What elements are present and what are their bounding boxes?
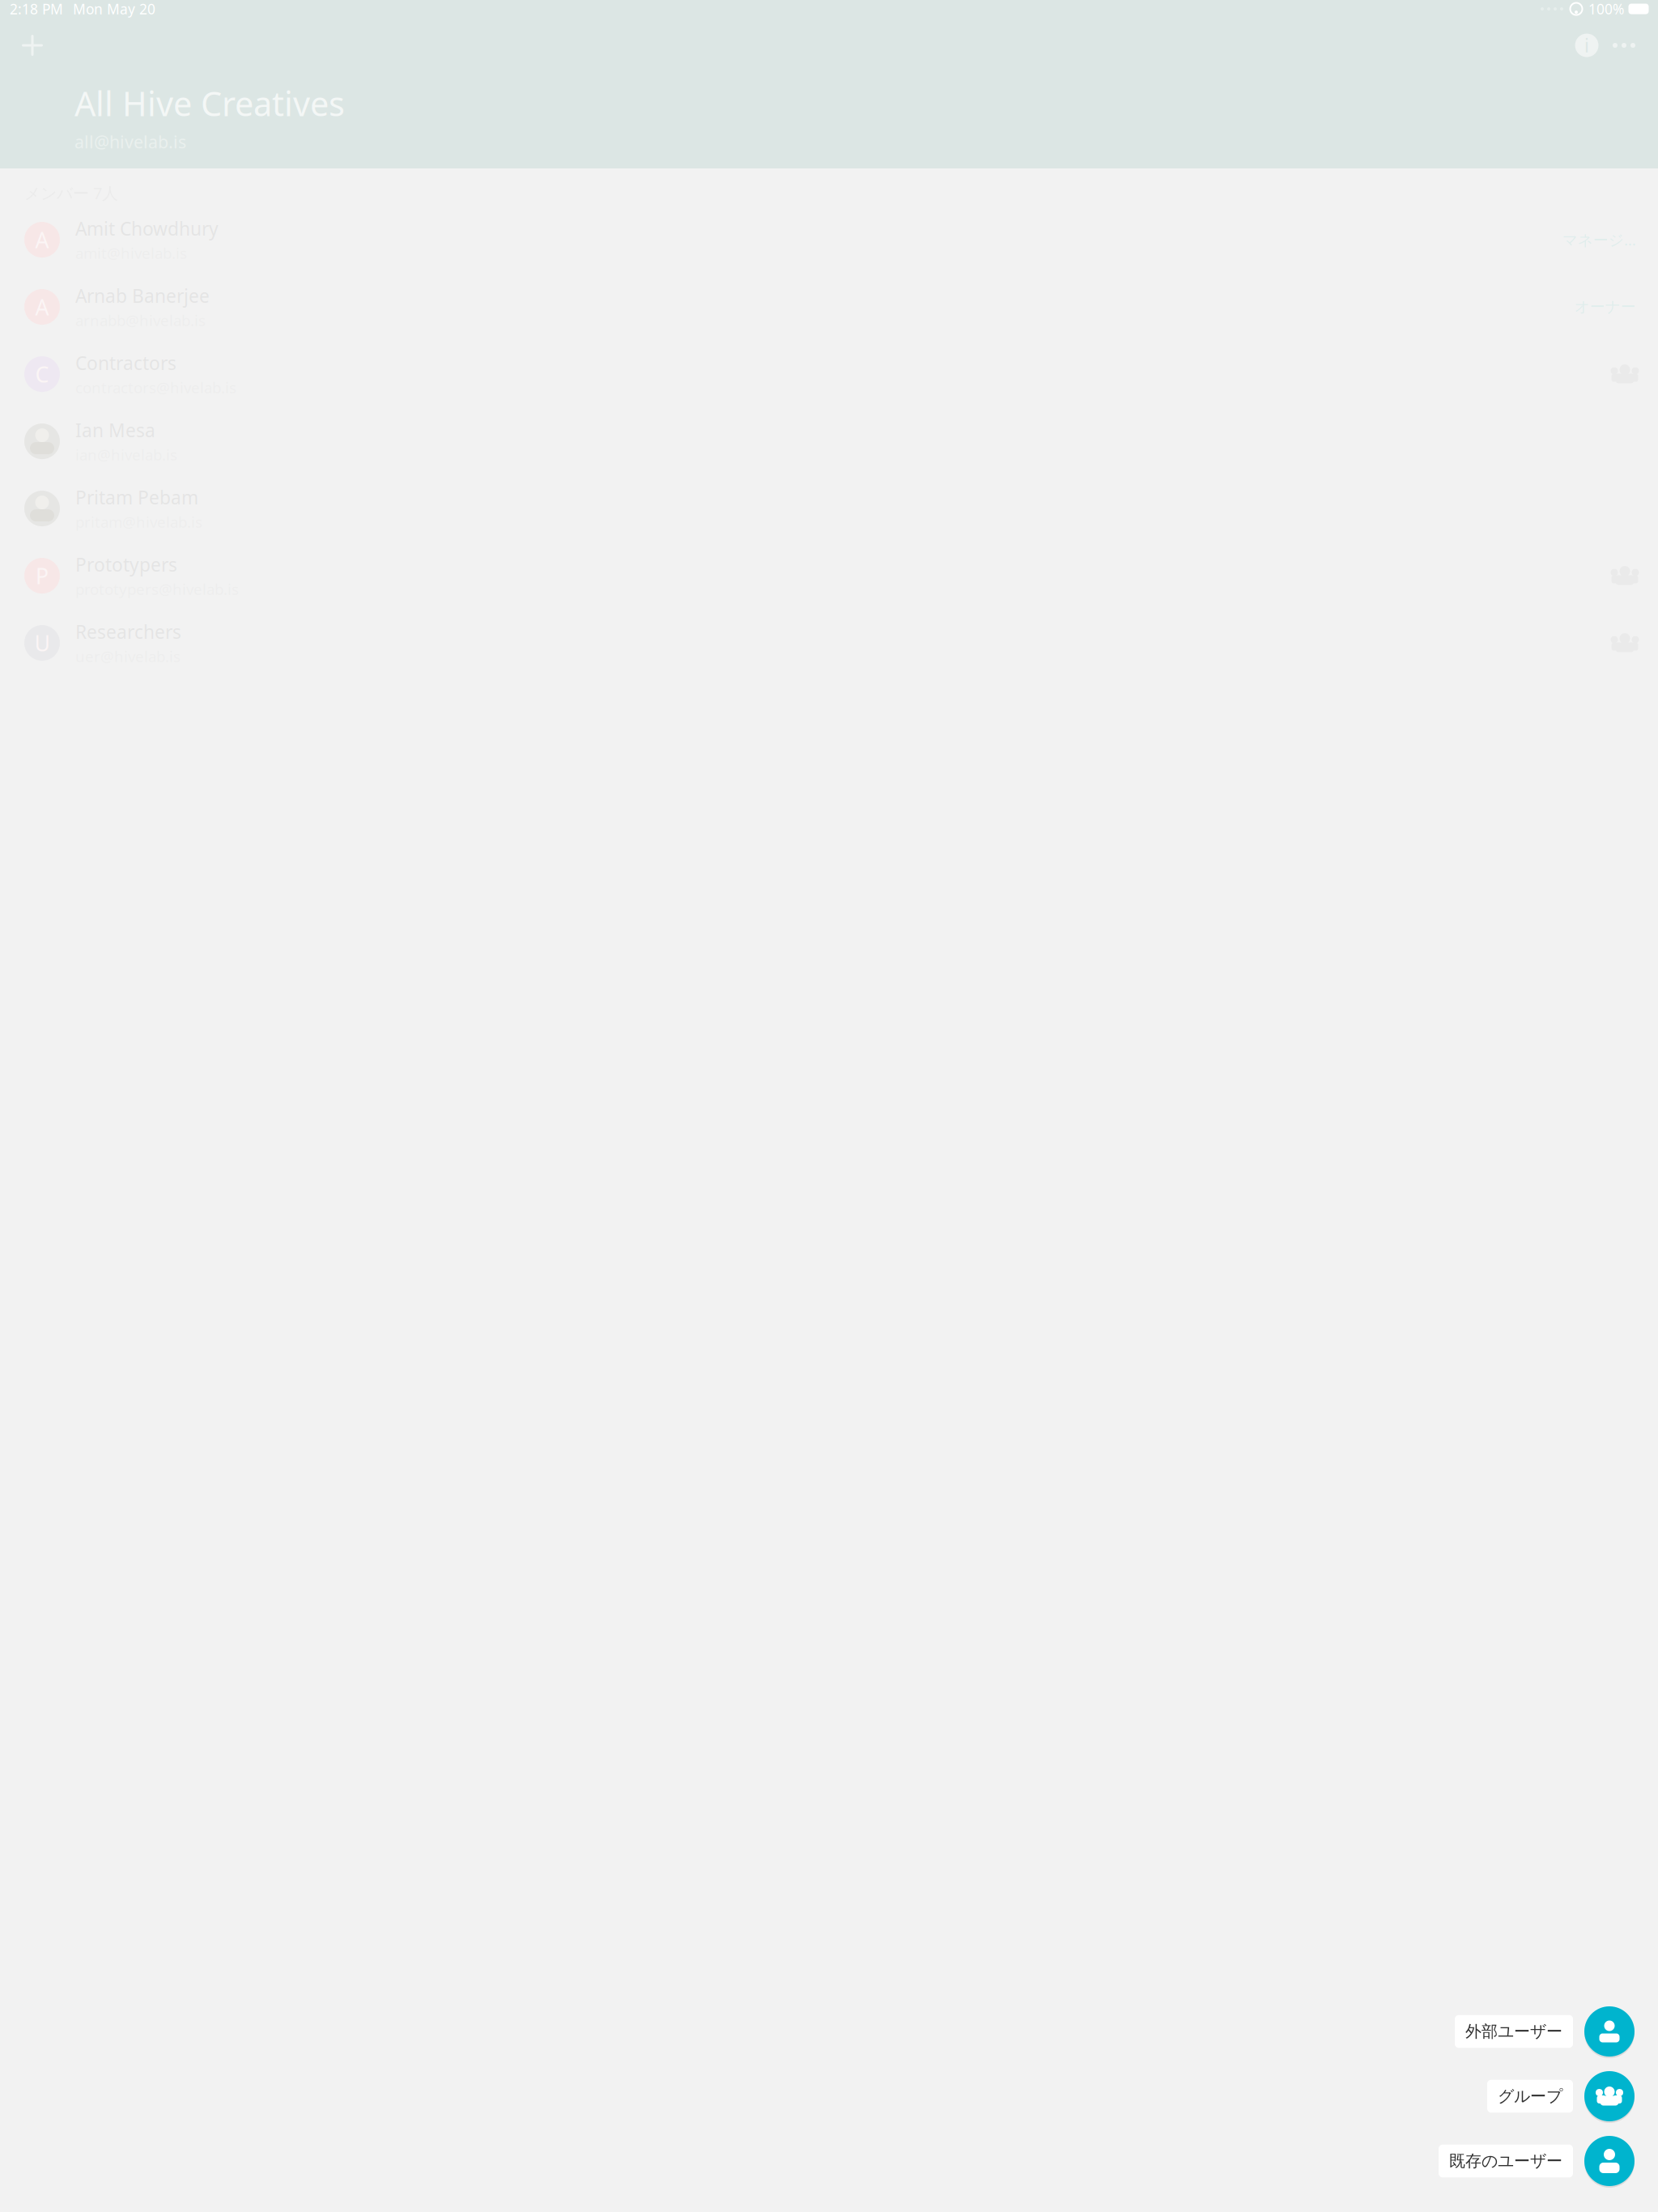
staticText: All Hive Creatives (74, 81, 345, 125)
staticText: 既存のユーザー (1449, 2151, 1562, 2171)
staticText: マネージ… (1562, 230, 1636, 250)
button[interactable]: Information (1569, 28, 1605, 63)
staticText: A (35, 225, 49, 254)
staticText: Ian Mesa (75, 418, 155, 442)
staticText: i (1584, 33, 1589, 57)
staticText: Prototypers (75, 552, 177, 577)
staticText: 100% (1588, 0, 1624, 18)
button[interactable]: Close (15, 28, 50, 63)
staticText: Pritam Pebam (75, 485, 198, 509)
button[interactable]: グループ (1487, 2069, 1635, 2123)
staticText: オーナー (1575, 298, 1636, 316)
button[interactable]: 既存のユーザー (1439, 2134, 1635, 2188)
staticText: 外部ユーザー (1465, 2021, 1562, 2041)
staticText: C (35, 360, 49, 388)
button[interactable]: 外部ユーザー (1455, 2005, 1635, 2058)
staticText: Researchers (75, 619, 181, 644)
staticText: Mon May 20 (73, 0, 155, 18)
staticText: P (36, 561, 49, 590)
button[interactable]: More options (1605, 28, 1643, 63)
staticText: Arnab Banerjee (75, 283, 210, 308)
staticText: U (34, 629, 50, 657)
staticText: 2:18 PM (10, 0, 63, 18)
staticText: グループ (1498, 2086, 1562, 2106)
staticText: A (35, 293, 49, 321)
staticText: Contractors (75, 351, 176, 375)
staticText: all@hivelab.is (74, 130, 186, 153)
staticText: Amit Chowdhury (75, 216, 219, 241)
